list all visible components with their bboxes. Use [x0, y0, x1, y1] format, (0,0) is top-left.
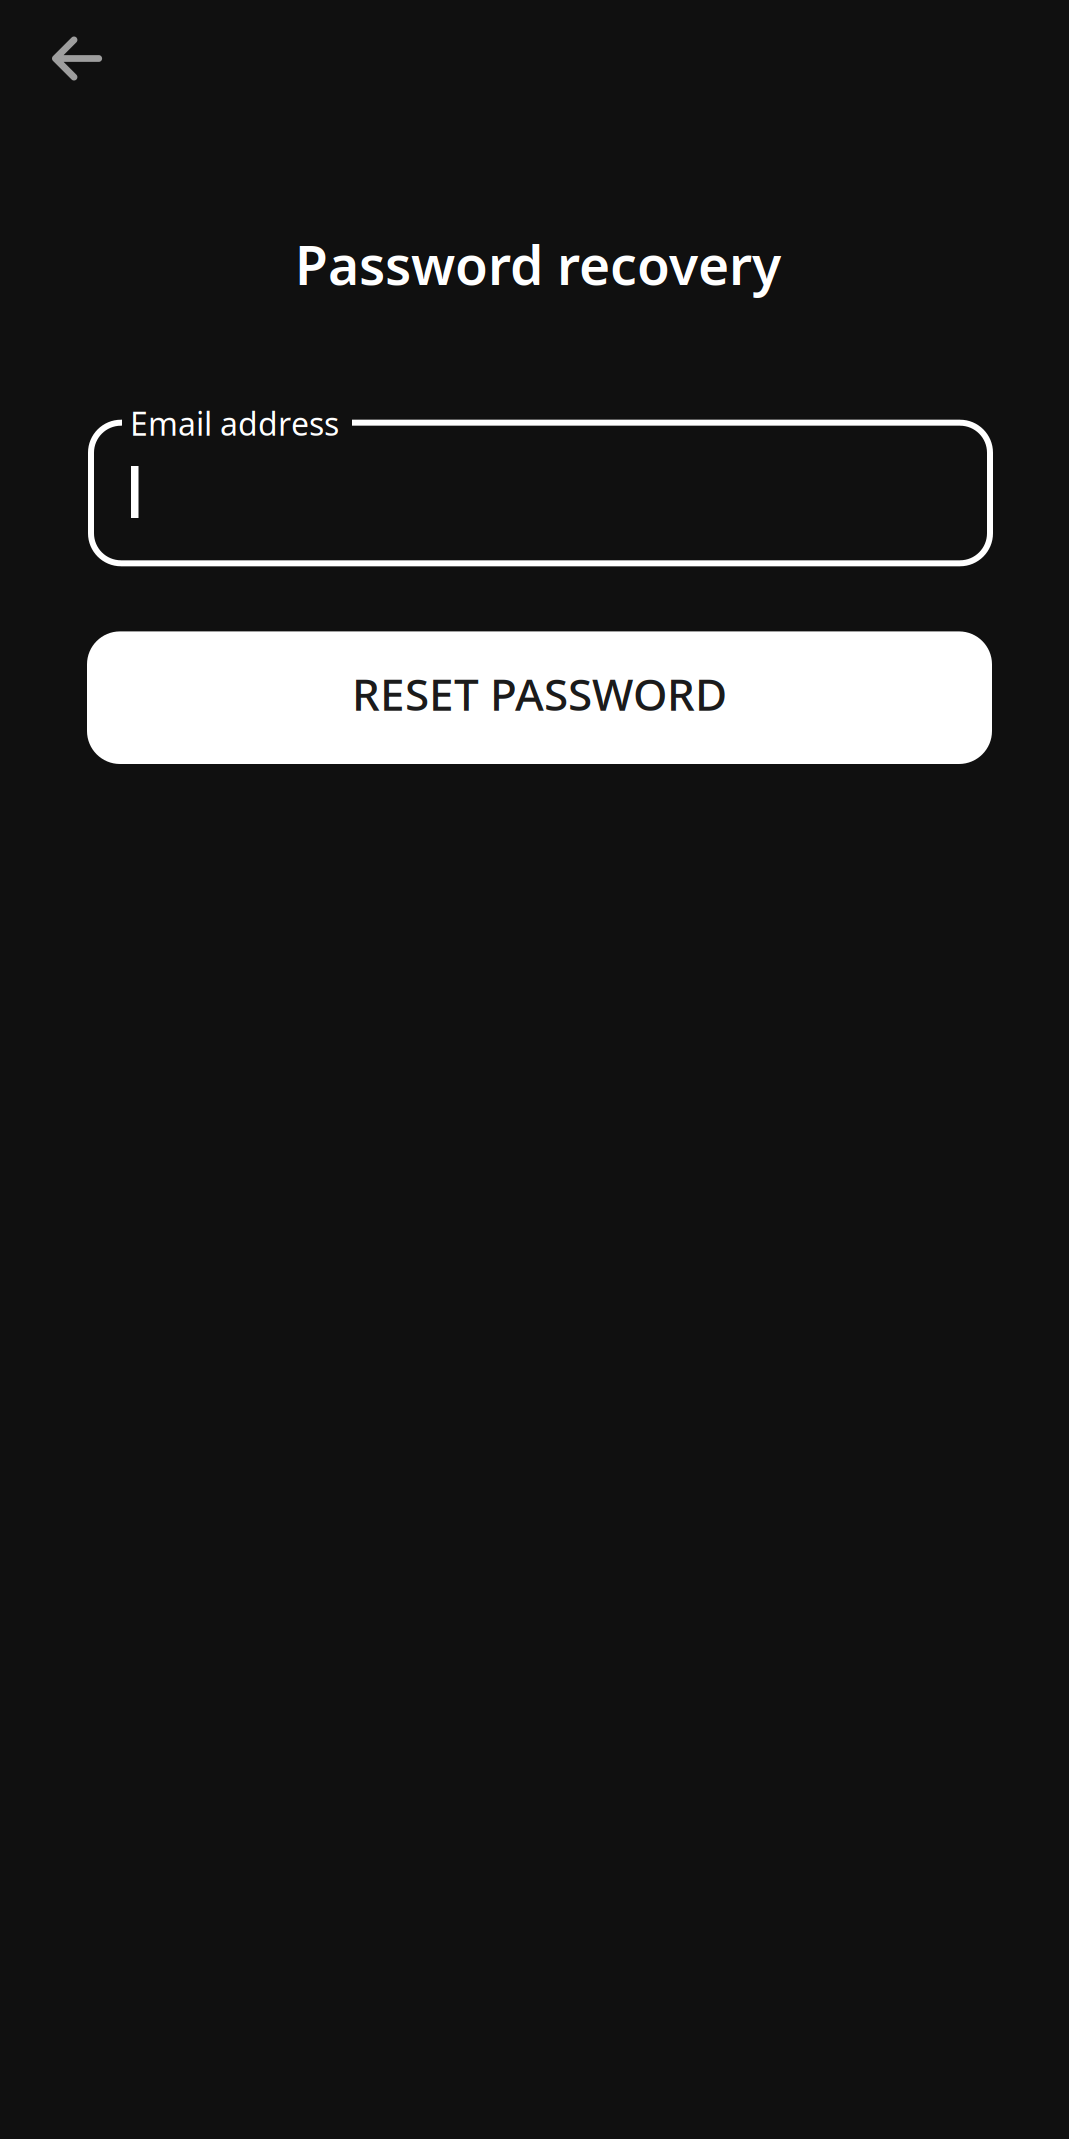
button[interactable]: Email address [88, 420, 993, 566]
button[interactable]: Back [0, 0, 144, 144]
button[interactable]: RESET PASSWORD [87, 631, 992, 764]
staticText: Email address [130, 402, 339, 445]
staticText: RESET PASSWORD [352, 664, 727, 723]
staticText: Password recovery [295, 229, 781, 300]
